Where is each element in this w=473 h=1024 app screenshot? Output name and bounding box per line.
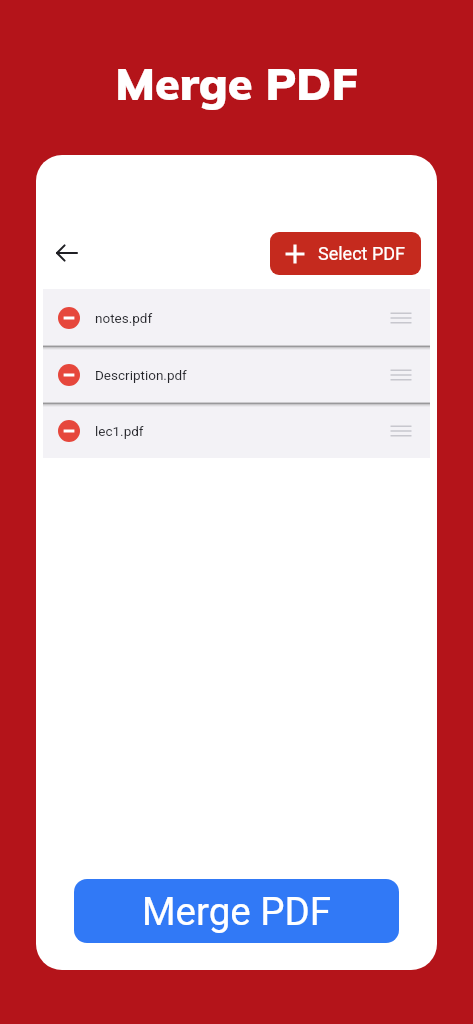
button[interactable]: Remove lec1.pdf — [58, 420, 80, 442]
button[interactable]: Remove Description.pdf — [58, 364, 80, 386]
button[interactable]: Reorder Description.pdf — [384, 358, 418, 392]
button[interactable]: Remove notes.pdf — [43, 289, 430, 346]
button[interactable]: Reorder notes.pdf — [384, 301, 418, 335]
staticText: Select PDF — [318, 243, 406, 264]
button[interactable]: Remove lec1.pdf — [43, 403, 430, 458]
button[interactable]: Select PDF — [270, 232, 421, 275]
staticText: Description.pdf — [95, 367, 187, 383]
button[interactable]: Back — [45, 231, 89, 275]
button[interactable]: Reorder lec1.pdf — [384, 414, 418, 448]
button[interactable]: Remove notes.pdf — [58, 307, 80, 329]
button[interactable]: Remove Description.pdf — [43, 346, 430, 403]
button[interactable]: Merge PDF — [74, 879, 399, 943]
staticText: lec1.pdf — [95, 423, 144, 439]
staticText: Merge PDF — [0, 55, 473, 111]
staticText: Merge PDF — [142, 889, 332, 934]
staticText: notes.pdf — [95, 310, 153, 326]
